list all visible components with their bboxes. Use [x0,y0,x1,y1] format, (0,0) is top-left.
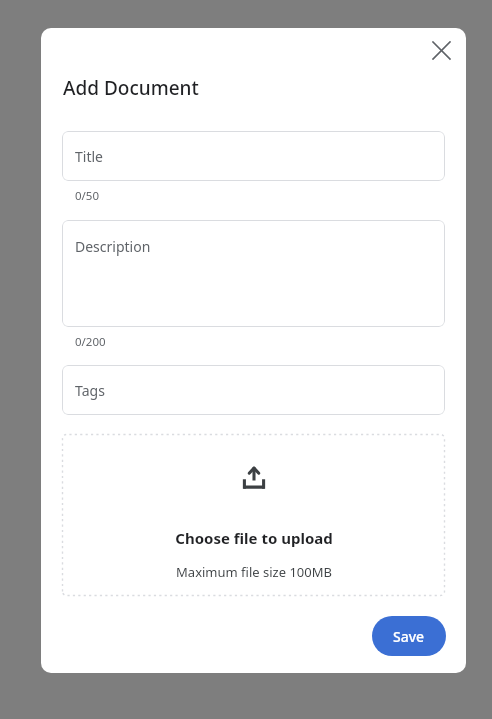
button[interactable]: Tags [62,365,445,415]
staticText: 0/200 [75,334,106,350]
staticText: Tags [75,381,105,400]
button[interactable]: Description [62,220,445,327]
staticText: 0/50 [75,188,100,204]
staticText: Add Document [63,75,199,101]
button[interactable]: Save [372,616,446,656]
staticText: Choose file to upload [175,528,333,548]
button[interactable]: Close [419,28,463,72]
staticText: Maximum file size 100MB [176,563,332,581]
staticText: Title [75,147,103,166]
staticText: Description [75,237,151,256]
staticText: Save [393,627,425,646]
button[interactable]: Title [62,131,445,181]
button[interactable]: Choose file to upload [62,434,445,596]
